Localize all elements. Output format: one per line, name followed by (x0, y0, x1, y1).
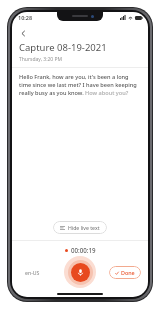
staticText: Capture 08-19-2021 (19, 41, 107, 54)
staticText: Hello Frank, how are you, it's been a lo… (19, 73, 141, 97)
button[interactable]: Back (15, 25, 31, 41)
button[interactable]: Hide live text (53, 221, 107, 234)
staticText: Hide live text (68, 224, 100, 231)
staticText: 00:00:19 (71, 246, 96, 254)
button[interactable]: Stop recording (64, 256, 96, 288)
button[interactable]: Done (109, 266, 141, 279)
staticText: Thursday, 3:20 PM (19, 56, 63, 63)
staticText: 10:28 (18, 14, 33, 21)
staticText: Done (121, 269, 135, 276)
staticText: en-US (25, 269, 40, 276)
